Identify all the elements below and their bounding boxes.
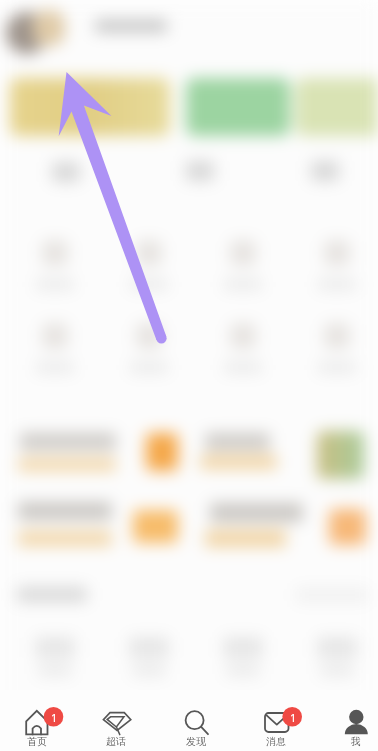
staticText: 1 [290, 710, 297, 724]
staticText: 超话 [106, 735, 126, 748]
button[interactable]: Discover [156, 694, 236, 751]
staticText: 1 [51, 710, 58, 724]
button[interactable]: Super topic [76, 694, 156, 751]
staticText: 消息 [266, 735, 286, 748]
staticText: 发现 [186, 735, 206, 748]
staticText: 首页 [27, 735, 47, 748]
button[interactable]: Home [0, 694, 77, 751]
button[interactable]: Profile [316, 694, 378, 751]
staticText: 我 [351, 735, 361, 748]
button[interactable]: Messages [236, 694, 316, 751]
